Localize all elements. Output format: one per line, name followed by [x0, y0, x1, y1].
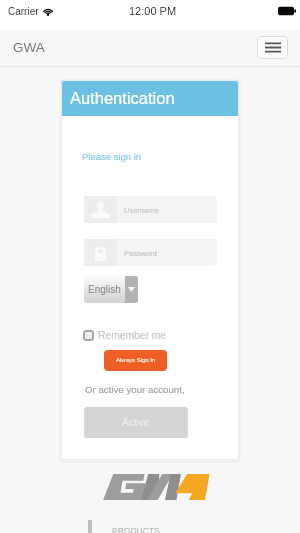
button[interactable]: Username — [84, 196, 217, 223]
button[interactable]: Remember me — [83, 329, 167, 342]
staticText: GWA — [13, 40, 45, 55]
staticText: Carrier — [8, 6, 39, 17]
staticText: Authentication — [70, 89, 175, 107]
staticText: English — [88, 284, 121, 295]
button[interactable]: Always Sign In — [104, 350, 167, 371]
staticText: 12:00 PM — [129, 5, 177, 17]
staticText: Please sign in — [82, 151, 142, 162]
button[interactable]: Password — [84, 239, 217, 266]
staticText: Remember me — [98, 330, 167, 342]
staticText: Or active your account, — [85, 384, 185, 395]
button[interactable]: Menu — [257, 36, 288, 59]
staticText: Username — [124, 206, 159, 214]
staticText: Always Sign In — [116, 357, 156, 364]
staticText: Password — [124, 249, 157, 257]
staticText: PRODUCTS — [112, 526, 160, 533]
button[interactable]: English — [84, 276, 138, 303]
button[interactable]: Active — [84, 407, 188, 438]
staticText: Active — [122, 417, 150, 428]
